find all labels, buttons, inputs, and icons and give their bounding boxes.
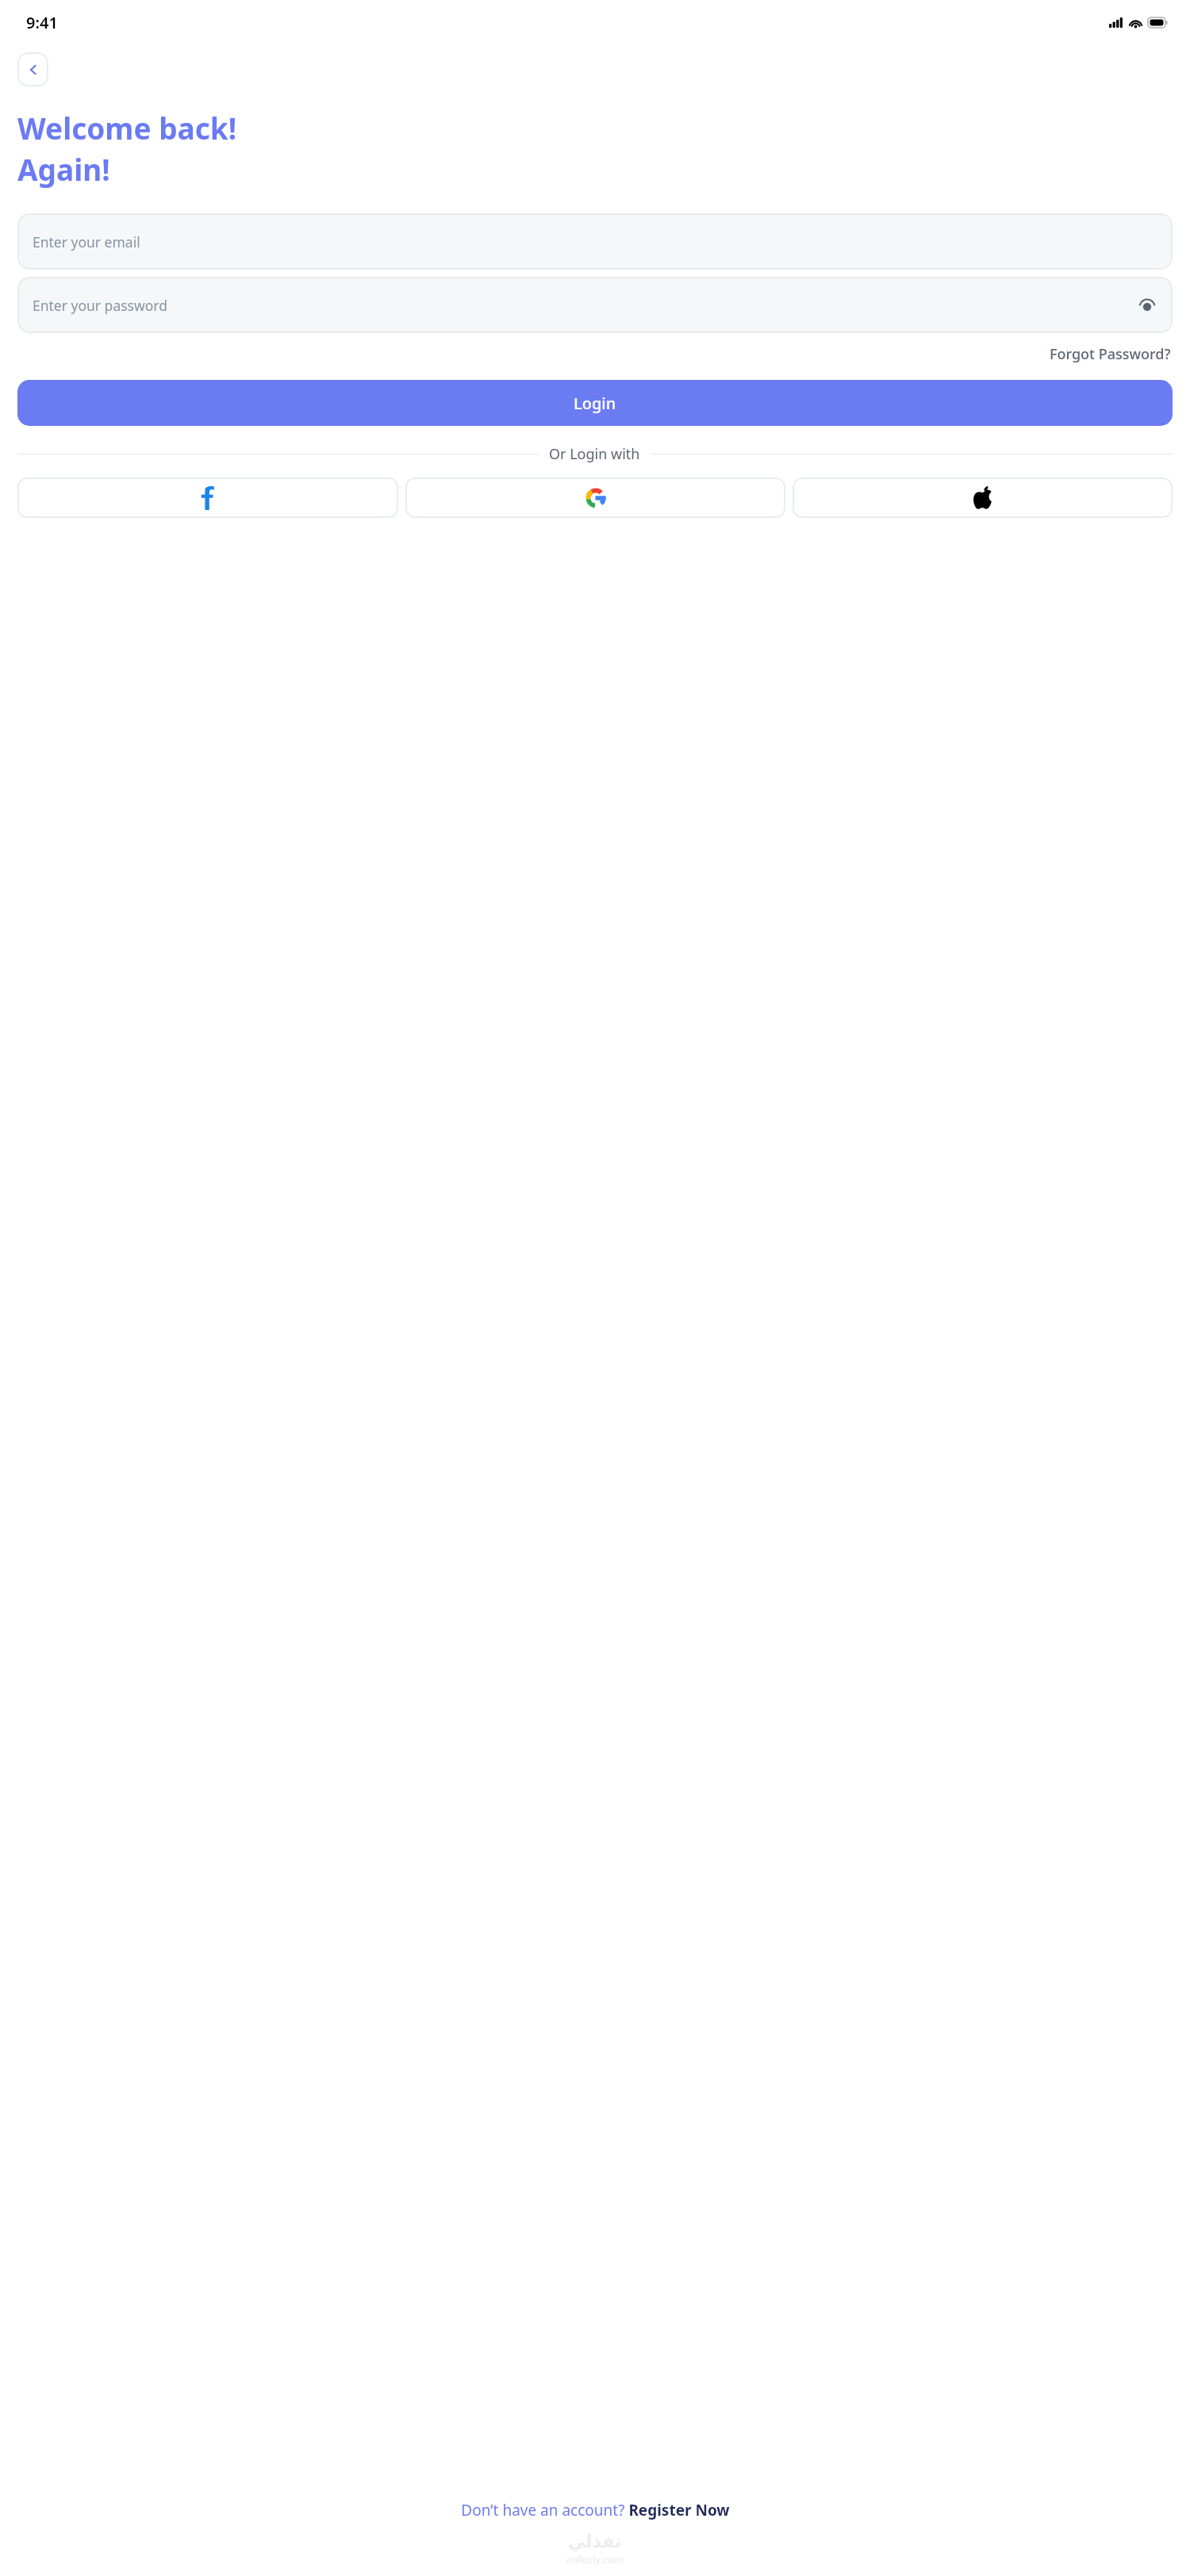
staticText: 9:41 [26,12,58,33]
staticText: Enter your password [33,296,1137,315]
staticText: نفذلي [568,2532,622,2552]
button[interactable]: Enter your password [17,277,1173,333]
staticText: nafezly.com [566,2552,624,2566]
staticText: Login [574,393,616,414]
button[interactable]: Don’t have an account? Register Now [0,2500,1190,2520]
staticText: Forgot Password? [1050,344,1171,364]
button[interactable]: Forgot Password? [1048,339,1173,369]
staticText: Enter your email [33,232,1157,251]
staticText: Or Login with [549,444,640,464]
staticText: Welcome back! [17,108,237,148]
staticText: Again! [17,149,110,189]
button[interactable]: Sign in with Facebook [17,477,398,518]
staticText: Don’t have an account? Register Now [461,2500,730,2520]
button[interactable]: Login [17,380,1173,426]
button[interactable]: Sign in with Google [405,477,785,518]
button[interactable]: Show password [1137,295,1157,316]
button[interactable]: Sign in with Apple [793,477,1173,518]
button[interactable]: Back [17,52,48,86]
button[interactable]: Enter your email [17,213,1173,270]
